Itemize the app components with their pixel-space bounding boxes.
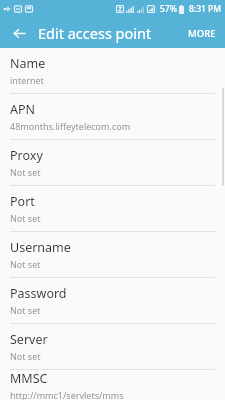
staticText: Not set [10,166,41,178]
button[interactable]: Proxy [0,140,225,186]
staticText: APN [10,101,36,118]
staticText: Server [10,331,48,348]
staticText: internet [10,74,44,86]
staticText: Edit access point [38,23,152,43]
staticText: Not set [10,304,41,316]
staticText: Port [10,193,35,210]
staticText: 57% [160,3,177,15]
button[interactable]: Username [0,232,225,278]
button[interactable]: Port [0,186,225,232]
staticText: Not set [10,212,41,224]
button[interactable]: Password [0,278,225,324]
staticText: Not set [10,258,41,270]
button[interactable]: Name [0,48,225,94]
button[interactable]: APN [0,94,225,140]
staticText: Username [10,239,71,256]
staticText: Not set [10,350,41,362]
staticText: Proxy [10,147,43,164]
staticText: MMSC [10,370,48,387]
staticText: Password [10,285,67,302]
button[interactable]: Server [0,324,225,370]
staticText: http://mmc1/servlets/mms [10,389,124,400]
staticText: Name [10,55,46,72]
button[interactable]: Navigate up [7,21,31,45]
staticText: 48months.liffeytelecom.com [10,120,131,132]
staticText: 8:31 PM [189,3,222,15]
staticText: MORE [188,27,216,40]
button[interactable]: MORE [179,18,225,48]
button[interactable]: MMSC [0,370,225,400]
